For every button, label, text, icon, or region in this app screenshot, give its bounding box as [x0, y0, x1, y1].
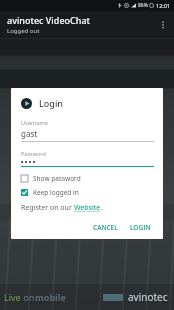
staticText: CANCEL — [93, 223, 118, 232]
button[interactable]: Show password — [21, 174, 154, 183]
staticText: mobile — [35, 291, 66, 303]
button[interactable]: Website — [74, 203, 101, 213]
staticText: gast — [21, 128, 38, 139]
button[interactable]: Keep logged in — [21, 188, 154, 197]
button[interactable]: CANCEL — [90, 221, 121, 234]
staticText: Username — [21, 119, 48, 126]
staticText: 86% — [138, 2, 148, 9]
staticText: . — [101, 203, 103, 213]
staticText: on — [21, 291, 35, 303]
staticText: Logged out — [7, 27, 40, 35]
staticText: Password — [21, 150, 46, 157]
staticText: Keep logged in — [33, 188, 79, 197]
staticText: avinotec — [128, 290, 168, 304]
button[interactable]: More options — [154, 16, 172, 34]
button[interactable]: LOGIN — [127, 221, 154, 234]
staticText: Show password — [33, 174, 81, 183]
staticText: Live — [4, 291, 21, 303]
staticText: LOGIN — [130, 223, 151, 232]
staticText: 12:01 — [156, 2, 171, 9]
staticText: Register on our — [21, 203, 74, 213]
staticText: Login — [39, 97, 63, 109]
staticText: avinotec VideoChat — [7, 14, 90, 26]
